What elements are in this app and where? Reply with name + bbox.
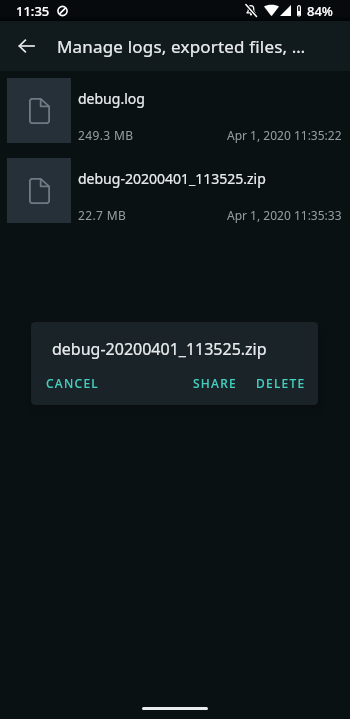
staticText: 11:35 bbox=[16, 2, 50, 20]
staticText: CANCEL bbox=[46, 375, 100, 391]
button[interactable]: CANCEL bbox=[41, 365, 105, 401]
staticText: 22.7 MB bbox=[78, 207, 127, 223]
staticText: debug-20200401_113525.zip bbox=[78, 169, 266, 188]
staticText: DELETE bbox=[256, 375, 306, 391]
staticText: Apr 1, 2020 11:35:33 bbox=[227, 207, 342, 223]
staticText: debug.log bbox=[78, 89, 145, 108]
staticText: debug-20200401_113525.zip bbox=[52, 338, 267, 360]
button[interactable]: DELETE bbox=[249, 365, 313, 401]
button[interactable]: debug.log bbox=[0, 78, 350, 143]
staticText: Apr 1, 2020 11:35:22 bbox=[227, 127, 342, 143]
button[interactable]: SHARE bbox=[183, 365, 247, 401]
button[interactable]: Navigate up bbox=[5, 26, 45, 66]
staticText: 249.3 MB bbox=[78, 127, 134, 143]
staticText: Manage logs, exported files, … bbox=[57, 35, 306, 58]
staticText: SHARE bbox=[193, 375, 237, 391]
button[interactable]: debug-20200401_113525.zip bbox=[0, 158, 350, 223]
staticText: 84% bbox=[307, 2, 333, 20]
